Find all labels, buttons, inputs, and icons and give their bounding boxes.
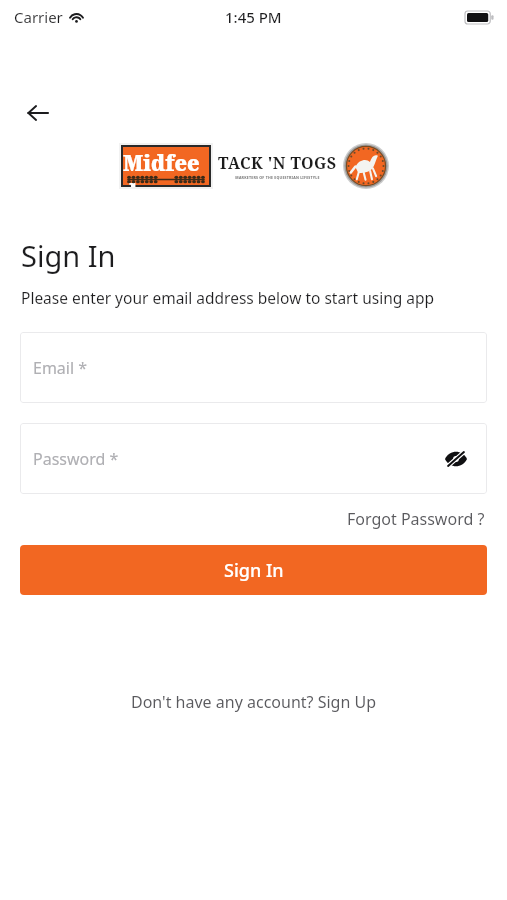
button[interactable]: Don't have any account? Sign Up xyxy=(125,687,382,717)
button[interactable]: Sign In xyxy=(20,545,487,595)
staticText: Don't have any account? Sign Up xyxy=(131,691,376,713)
staticText: MARKETERS OF THE EQUESTRIAN LIFESTYLE xyxy=(235,175,320,180)
staticText: 1:45 PM xyxy=(225,7,282,27)
staticText: Carrier xyxy=(14,7,63,27)
staticText: Please enter your email address below to… xyxy=(21,287,435,308)
button[interactable]: Password * xyxy=(20,423,487,494)
button[interactable]: Show password xyxy=(439,442,473,476)
button[interactable]: Forgot Password ? xyxy=(345,504,487,534)
staticText: Midfeeds xyxy=(123,149,209,187)
staticText: Forgot Password ? xyxy=(347,508,485,530)
button[interactable]: Back xyxy=(14,89,62,137)
staticText: TACK 'N TOGS xyxy=(218,152,337,174)
staticText: Sign In xyxy=(224,558,284,583)
staticText: Password * xyxy=(33,448,119,470)
staticText: Email * xyxy=(33,357,88,379)
staticText: Sign In xyxy=(21,236,116,275)
button[interactable]: Email * xyxy=(20,332,487,403)
